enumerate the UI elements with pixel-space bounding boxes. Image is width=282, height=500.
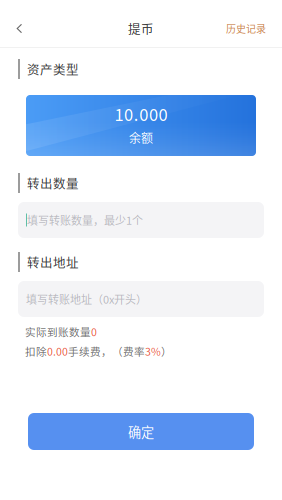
button[interactable]: 填写转账数量，最少1个 [18,202,264,238]
staticText: 实际到账数量 [25,324,91,339]
staticText: 0.00 [47,343,68,359]
staticText: 确定 [128,422,154,441]
staticText: 提币 [128,19,154,38]
button[interactable]: 填写转账地址（0x开头） [18,281,264,317]
button[interactable]: 10.000 [26,95,256,156]
staticText: 0 [91,324,97,339]
staticText: 转出数量 [27,174,79,192]
staticText: 转出地址 [27,253,79,271]
staticText: 余额 [129,129,153,146]
button[interactable]: 确定 [28,413,254,450]
staticText: 扣除 [25,343,47,359]
staticText: 3% [145,343,161,359]
button[interactable]: Back [0,9,35,48]
staticText: 资产类型 [27,60,79,78]
button[interactable]: 历史记录 [214,9,282,48]
staticText: 手续费，（费率 [68,343,145,359]
staticText: 10.000 [114,102,167,126]
staticText: 历史记录 [226,21,266,36]
staticText: 填写转账地址（0x开头） [26,291,147,307]
staticText: ） [161,343,172,359]
staticText: 填写转账数量，最少1个 [27,212,143,228]
